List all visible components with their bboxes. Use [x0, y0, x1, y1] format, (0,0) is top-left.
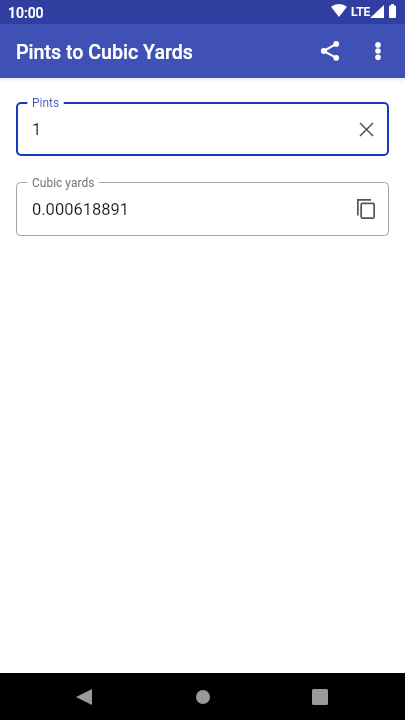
button[interactable]: Copy — [347, 190, 385, 228]
staticText: 10:00 — [8, 5, 44, 21]
staticText: 1 — [32, 120, 42, 139]
button[interactable]: Share — [306, 24, 354, 78]
staticText: 0.000618891 — [32, 200, 130, 219]
button[interactable]: Home — [163, 673, 243, 720]
button[interactable]: Recents — [282, 673, 362, 720]
staticText: Pints to Cubic Yards — [16, 41, 193, 64]
staticText: Cubic yards — [32, 176, 95, 190]
staticText: LTE — [351, 5, 371, 19]
button[interactable]: Back — [43, 673, 123, 720]
button[interactable]: Clear — [347, 110, 385, 148]
staticText: Pints — [32, 96, 60, 110]
button[interactable]: More options — [354, 24, 402, 78]
